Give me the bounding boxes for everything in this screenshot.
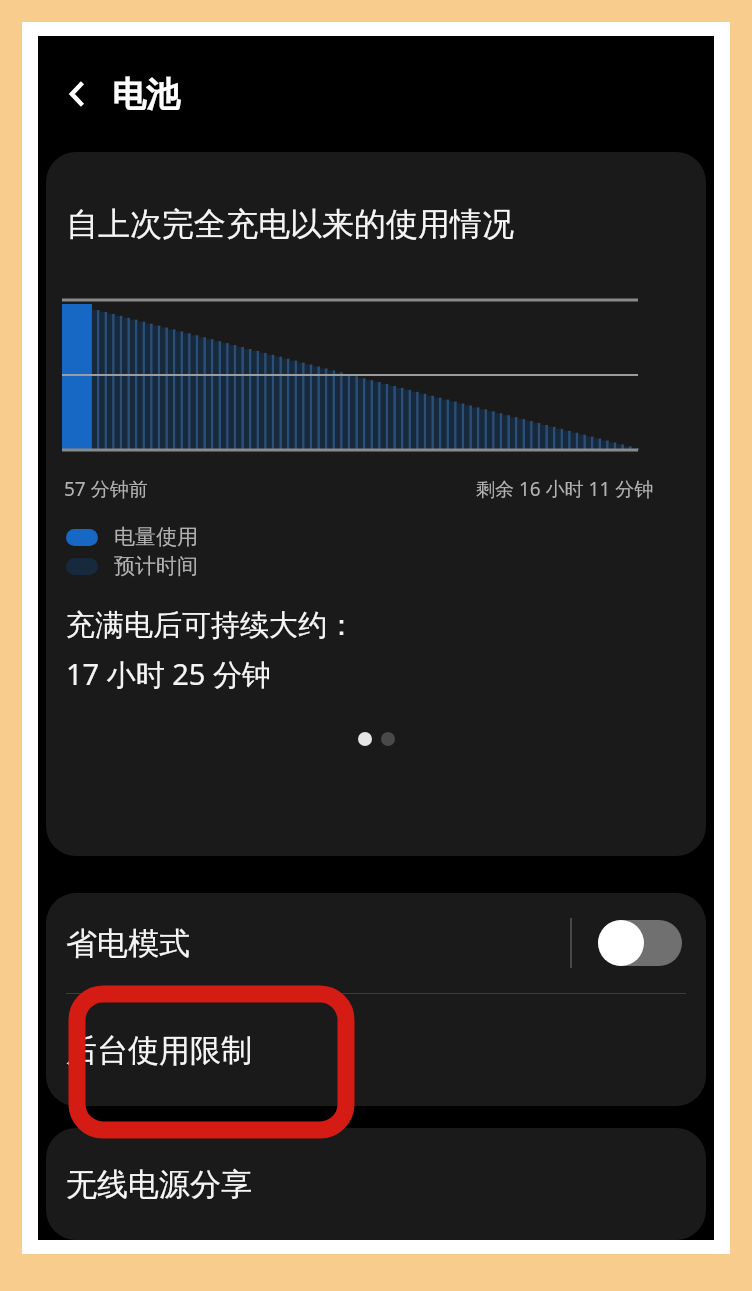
button[interactable]: Power saving toggle xyxy=(598,920,682,966)
staticText: 无线电源分享 xyxy=(66,1165,252,1204)
staticText: 省电模式 xyxy=(66,924,190,963)
staticText: 自上次完全充电以来的使用情况 xyxy=(66,204,514,244)
staticText: 预计时间 xyxy=(114,553,198,579)
staticText: 剩余 16 小时 11 分钟 xyxy=(476,476,654,502)
button[interactable]: 后台使用限制 xyxy=(46,994,706,1106)
button[interactable]: 自上次完全充电以来的使用情况 xyxy=(46,152,706,856)
staticText: 17 小时 25 分钟 xyxy=(66,654,271,694)
button[interactable]: 无线电源分享 xyxy=(46,1128,706,1240)
button[interactable]: 省电模式 xyxy=(46,893,706,993)
staticText: 后台使用限制 xyxy=(66,1031,252,1070)
button[interactable]: Back xyxy=(50,66,106,122)
staticText: 电量使用 xyxy=(114,524,198,550)
staticText: 57 分钟前 xyxy=(64,476,148,502)
staticText: 电池 xyxy=(112,73,180,116)
staticText: 充满电后可持续大约： xyxy=(66,607,356,644)
